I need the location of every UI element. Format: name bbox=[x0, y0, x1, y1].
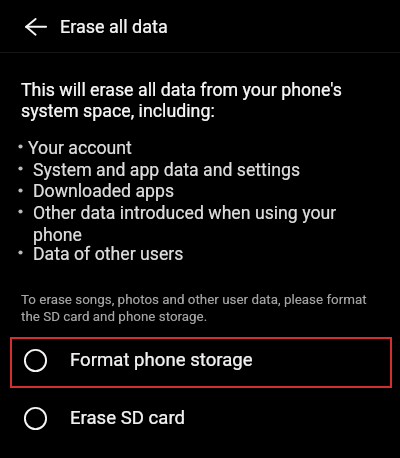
staticText: Other data introduced when using your ph… bbox=[33, 203, 348, 246]
button[interactable]: Back bbox=[12, 3, 58, 49]
staticText: Your account bbox=[28, 138, 132, 159]
staticText: Downloaded apps bbox=[33, 181, 175, 202]
button[interactable]: Format phone storage bbox=[10, 337, 392, 388]
staticText: This will erase all data from your phone… bbox=[21, 79, 362, 122]
staticText: System and app data and settings bbox=[33, 160, 301, 181]
staticText: To erase songs, photos and other user da… bbox=[21, 292, 376, 324]
staticText: Erase SD card bbox=[70, 407, 186, 429]
staticText: Erase all data bbox=[60, 16, 168, 37]
staticText: Format phone storage bbox=[70, 349, 253, 371]
staticText: Data of other users bbox=[33, 244, 184, 265]
button[interactable]: Erase SD card bbox=[10, 388, 392, 453]
